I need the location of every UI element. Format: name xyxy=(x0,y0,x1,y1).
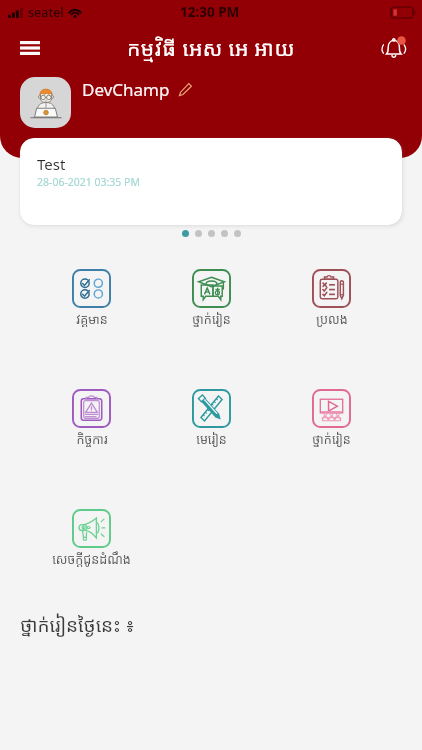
staticText: ថ្នាក់រៀន xyxy=(192,311,231,328)
button[interactable]: Notifications xyxy=(374,28,414,68)
staticText: Test xyxy=(37,154,66,174)
staticText: កម្មវិធី អេស អេ អាយ xyxy=(127,34,295,63)
staticText: កិច្ចការ xyxy=(76,431,108,448)
button[interactable]: Profile picture xyxy=(20,77,71,128)
staticText: DevChamp xyxy=(82,78,170,101)
staticText: មេរៀន xyxy=(196,431,227,448)
button[interactable]: មេរៀន xyxy=(192,389,231,448)
button[interactable]: Edit name xyxy=(177,81,194,98)
staticText: 28-06-2021 03:35 PM xyxy=(37,175,140,189)
button[interactable]: វគ្គមាន xyxy=(72,269,111,328)
button[interactable]: ថ្នាក់រៀន xyxy=(192,269,231,328)
button[interactable]: Test xyxy=(20,138,402,225)
button[interactable]: Menu xyxy=(10,28,50,68)
staticText: seatel xyxy=(28,4,64,21)
button[interactable]: ថ្នាក់រៀន xyxy=(312,389,351,448)
button[interactable]: ប្រលង xyxy=(312,269,351,328)
button[interactable]: កិច្ចការ xyxy=(72,389,111,448)
staticText: ថ្នាក់រៀនថ្ងៃនេះ ៖ xyxy=(20,612,135,638)
staticText: ថ្នាក់រៀន xyxy=(312,431,351,448)
staticText: ប្រលង xyxy=(316,311,348,328)
button[interactable]: សេចក្តីជូនដំណឹង xyxy=(52,509,131,568)
staticText: សេចក្តីជូនដំណឹង xyxy=(52,551,131,568)
staticText: វគ្គមាន xyxy=(76,311,108,328)
staticText: 12:30 PM xyxy=(180,3,240,21)
